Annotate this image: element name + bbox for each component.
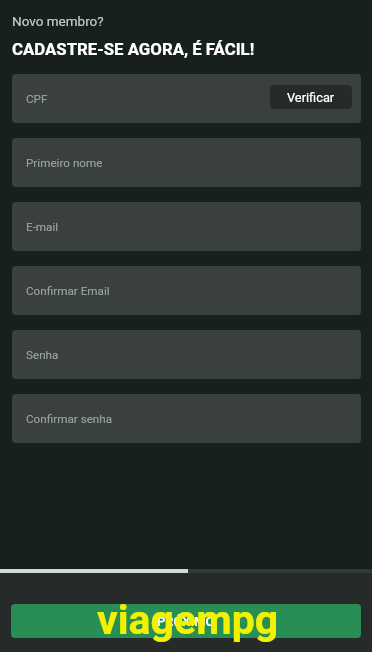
button[interactable]: E-mail [12,202,361,251]
button[interactable]: Confirmar senha [12,394,361,443]
staticText: Novo membro? [12,13,104,29]
button[interactable]: Verificar [270,85,352,109]
button[interactable]: CPF [12,74,361,123]
other: Progresso do cadastro [0,569,372,573]
staticText: Senha [26,348,59,362]
staticText: Primeiro nome [26,156,103,170]
staticText: viagempg [97,596,279,644]
staticText: Confirmar senha [26,412,113,426]
staticText: Verificar [287,90,335,105]
staticText: Confirmar Email [26,284,110,298]
staticText: CPF [26,92,48,106]
staticText: CADASTRE-SE AGORA, É FÁCIL! [12,39,255,59]
button[interactable]: Confirmar Email [12,266,361,315]
button[interactable]: PRÓXIMO [11,604,361,638]
staticText: PRÓXIMO [157,614,215,629]
staticText: E-mail [26,220,59,234]
button[interactable]: Primeiro nome [12,138,361,187]
button[interactable]: Senha [12,330,361,379]
